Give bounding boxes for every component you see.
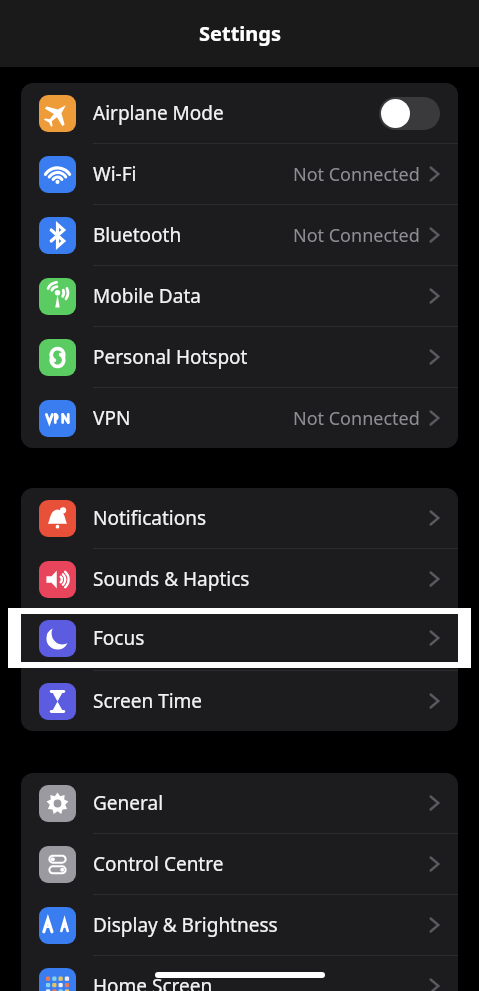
- staticText: Focus: [93, 627, 145, 653]
- staticText: Personal Hotspot: [93, 344, 248, 370]
- button[interactable]: Screen Time: [21, 671, 458, 731]
- staticText: Not Connected: [293, 406, 420, 431]
- button[interactable]: Home Screen: [21, 956, 458, 991]
- button[interactable]: General: [21, 773, 458, 833]
- button[interactable]: Sounds & Haptics: [21, 549, 458, 609]
- button[interactable]: Personal Hotspot: [21, 327, 458, 387]
- button[interactable]: Notifications: [21, 488, 458, 548]
- staticText: Wi-Fi: [93, 161, 137, 187]
- staticText: Screen Time: [93, 688, 203, 714]
- staticText: Airplane Mode: [93, 100, 224, 126]
- button[interactable]: Airplane Mode: [21, 83, 458, 143]
- button[interactable]: Airplane Mode toggle, off: [379, 97, 440, 130]
- button[interactable]: Display & Brightness: [21, 895, 458, 955]
- button[interactable]: VPN: [21, 388, 458, 448]
- staticText: Display & Brightness: [93, 912, 278, 938]
- staticText: Settings: [199, 20, 281, 47]
- staticText: VPN: [93, 405, 131, 431]
- staticText: Home Screen: [93, 973, 213, 991]
- button[interactable]: Wi-Fi: [21, 144, 458, 204]
- button[interactable]: Focus: [21, 610, 458, 670]
- staticText: Notifications: [93, 505, 207, 531]
- staticText: Not Connected: [293, 223, 420, 248]
- button[interactable]: Control Centre: [21, 834, 458, 894]
- button[interactable]: Bluetooth: [21, 205, 458, 265]
- staticText: Control Centre: [93, 851, 224, 877]
- staticText: Sounds & Haptics: [93, 566, 250, 592]
- staticText: General: [93, 790, 164, 816]
- button[interactable]: Focus: [0, 614, 479, 662]
- button[interactable]: Mobile Data: [21, 266, 458, 326]
- staticText: Mobile Data: [93, 283, 201, 309]
- staticText: Focus: [93, 625, 145, 651]
- staticText: Bluetooth: [93, 222, 182, 248]
- staticText: Not Connected: [293, 162, 420, 187]
